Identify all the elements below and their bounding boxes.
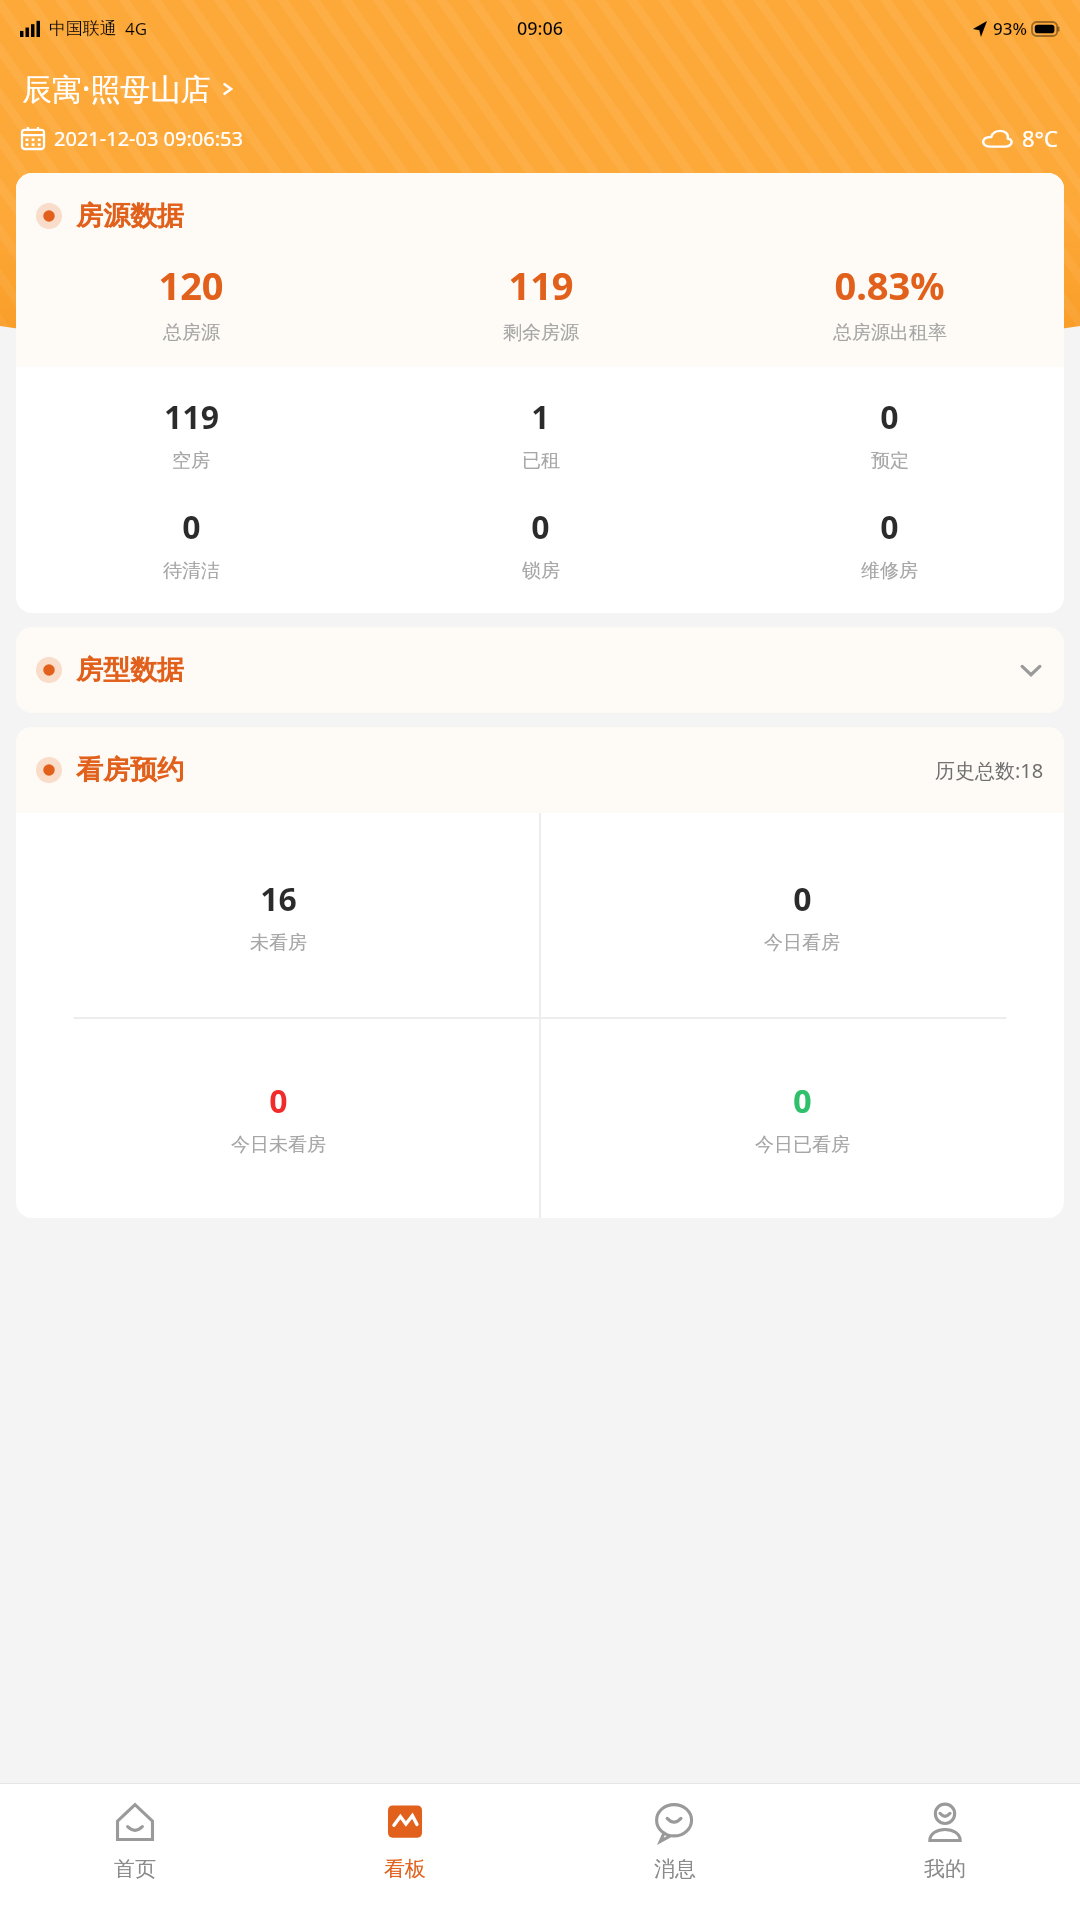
- button[interactable]: 0: [16, 505, 366, 583]
- staticText: 我的: [924, 1856, 966, 1882]
- staticText: 总房源出租率: [833, 321, 947, 345]
- button[interactable]: 0: [231, 1079, 326, 1157]
- staticText: 120: [158, 259, 224, 311]
- staticText: 预定: [871, 449, 909, 473]
- staticText: 1: [531, 395, 550, 439]
- button[interactable]: 我的: [810, 1784, 1080, 1920]
- staticText: 93%: [993, 17, 1027, 40]
- button[interactable]: 119: [366, 259, 715, 345]
- button[interactable]: 看板: [270, 1784, 540, 1920]
- staticText: 119: [164, 395, 219, 439]
- button[interactable]: 0: [715, 505, 1064, 583]
- staticText: 09:06: [517, 16, 564, 41]
- staticText: 16: [260, 877, 297, 921]
- staticText: 4G: [125, 17, 148, 40]
- button[interactable]: 16: [250, 877, 307, 955]
- staticText: 119: [508, 259, 574, 311]
- staticText: 0: [793, 1079, 812, 1123]
- staticText: 2021-12-03 09:06:53: [54, 125, 243, 152]
- staticText: 辰寓·照母山店: [22, 68, 211, 109]
- button[interactable]: 辰寓·照母山店: [22, 66, 235, 111]
- staticText: 已租: [522, 449, 560, 473]
- staticText: 消息: [654, 1856, 696, 1882]
- staticText: 剩余房源: [503, 321, 579, 345]
- button[interactable]: 119: [16, 395, 366, 473]
- staticText: 看房预约: [76, 753, 184, 787]
- staticText: 今日未看房: [231, 1133, 326, 1157]
- staticText: 0: [793, 877, 812, 921]
- staticText: 维修房: [861, 559, 918, 583]
- staticText: 总房源: [163, 321, 220, 345]
- staticText: 房源数据: [76, 199, 184, 233]
- button[interactable]: 房型数据: [16, 627, 1064, 713]
- button[interactable]: 0: [715, 395, 1064, 473]
- staticText: 未看房: [250, 931, 307, 955]
- staticText: 0: [531, 505, 550, 549]
- staticText: 今日看房: [764, 931, 840, 955]
- button[interactable]: 0.83%: [715, 259, 1064, 345]
- staticText: 8°C: [1022, 123, 1058, 153]
- staticText: 首页: [114, 1856, 156, 1882]
- staticText: 0: [269, 1079, 288, 1123]
- button[interactable]: 0: [764, 877, 840, 955]
- button[interactable]: 首页: [0, 1784, 270, 1920]
- staticText: 中国联通: [49, 18, 117, 39]
- button[interactable]: 0: [755, 1079, 850, 1157]
- button[interactable]: 1: [366, 395, 715, 473]
- button[interactable]: 120: [16, 259, 366, 345]
- button[interactable]: 消息: [540, 1784, 810, 1920]
- staticText: 今日已看房: [755, 1133, 850, 1157]
- staticText: 0: [880, 505, 899, 549]
- other: 展开房型数据: [1018, 657, 1044, 683]
- staticText: 历史总数:18: [935, 757, 1044, 784]
- staticText: 0.83%: [834, 259, 945, 311]
- staticText: 0: [880, 395, 899, 439]
- staticText: 锁房: [522, 559, 560, 583]
- button[interactable]: 0: [366, 505, 715, 583]
- staticText: 待清洁: [163, 559, 220, 583]
- staticText: 看板: [384, 1856, 426, 1882]
- staticText: 房型数据: [76, 653, 184, 687]
- staticText: 0: [182, 505, 201, 549]
- staticText: 空房: [172, 449, 210, 473]
